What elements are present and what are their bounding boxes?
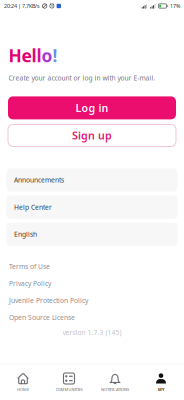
staticText: 20:24 | 7,7KB/s	[4, 2, 40, 10]
staticText: Announcements	[14, 176, 64, 184]
button[interactable]: Juvenile Protection Policy	[9, 292, 175, 309]
staticText: H	[8, 44, 21, 67]
button[interactable]: NOTIFICATIONS	[92, 364, 138, 400]
button[interactable]: Log in	[8, 96, 176, 119]
staticText: version 1.7.3 (145)	[62, 328, 121, 337]
staticText: l	[36, 44, 41, 67]
staticText: English	[14, 230, 37, 239]
staticText: l	[31, 44, 36, 67]
button[interactable]: MY	[138, 364, 184, 400]
button[interactable]: Terms of Use	[9, 258, 175, 275]
button[interactable]: HOME	[0, 364, 46, 400]
staticText: Juvenile Protection Policy	[9, 296, 88, 305]
button[interactable]: Help Center	[6, 195, 177, 219]
staticText: NOTIFICATIONS	[101, 387, 129, 392]
staticText: e	[21, 44, 31, 67]
button[interactable]: English	[6, 223, 177, 246]
staticText: Open Source License	[9, 313, 75, 322]
staticText: Help Center	[14, 203, 52, 212]
button[interactable]: Sign up	[8, 124, 176, 146]
staticText: HOME	[17, 387, 29, 392]
staticText: !	[52, 44, 57, 67]
button[interactable]: Privacy Policy	[9, 275, 175, 292]
staticText: o	[41, 44, 52, 67]
staticText: Sign up	[72, 128, 112, 142]
button[interactable]: Open Source License	[9, 309, 175, 326]
staticText: Log in	[75, 101, 108, 115]
staticText: COMMUNITIES	[55, 387, 82, 392]
button[interactable]: Announcements	[6, 168, 177, 192]
staticText: 17%	[170, 2, 180, 10]
button[interactable]: COMMUNITIES	[46, 364, 92, 400]
staticText: Privacy Policy	[9, 279, 51, 288]
staticText: Terms of Use	[9, 262, 50, 271]
staticText: MY	[158, 387, 164, 392]
staticText: Create your account or log in with your …	[8, 73, 155, 82]
